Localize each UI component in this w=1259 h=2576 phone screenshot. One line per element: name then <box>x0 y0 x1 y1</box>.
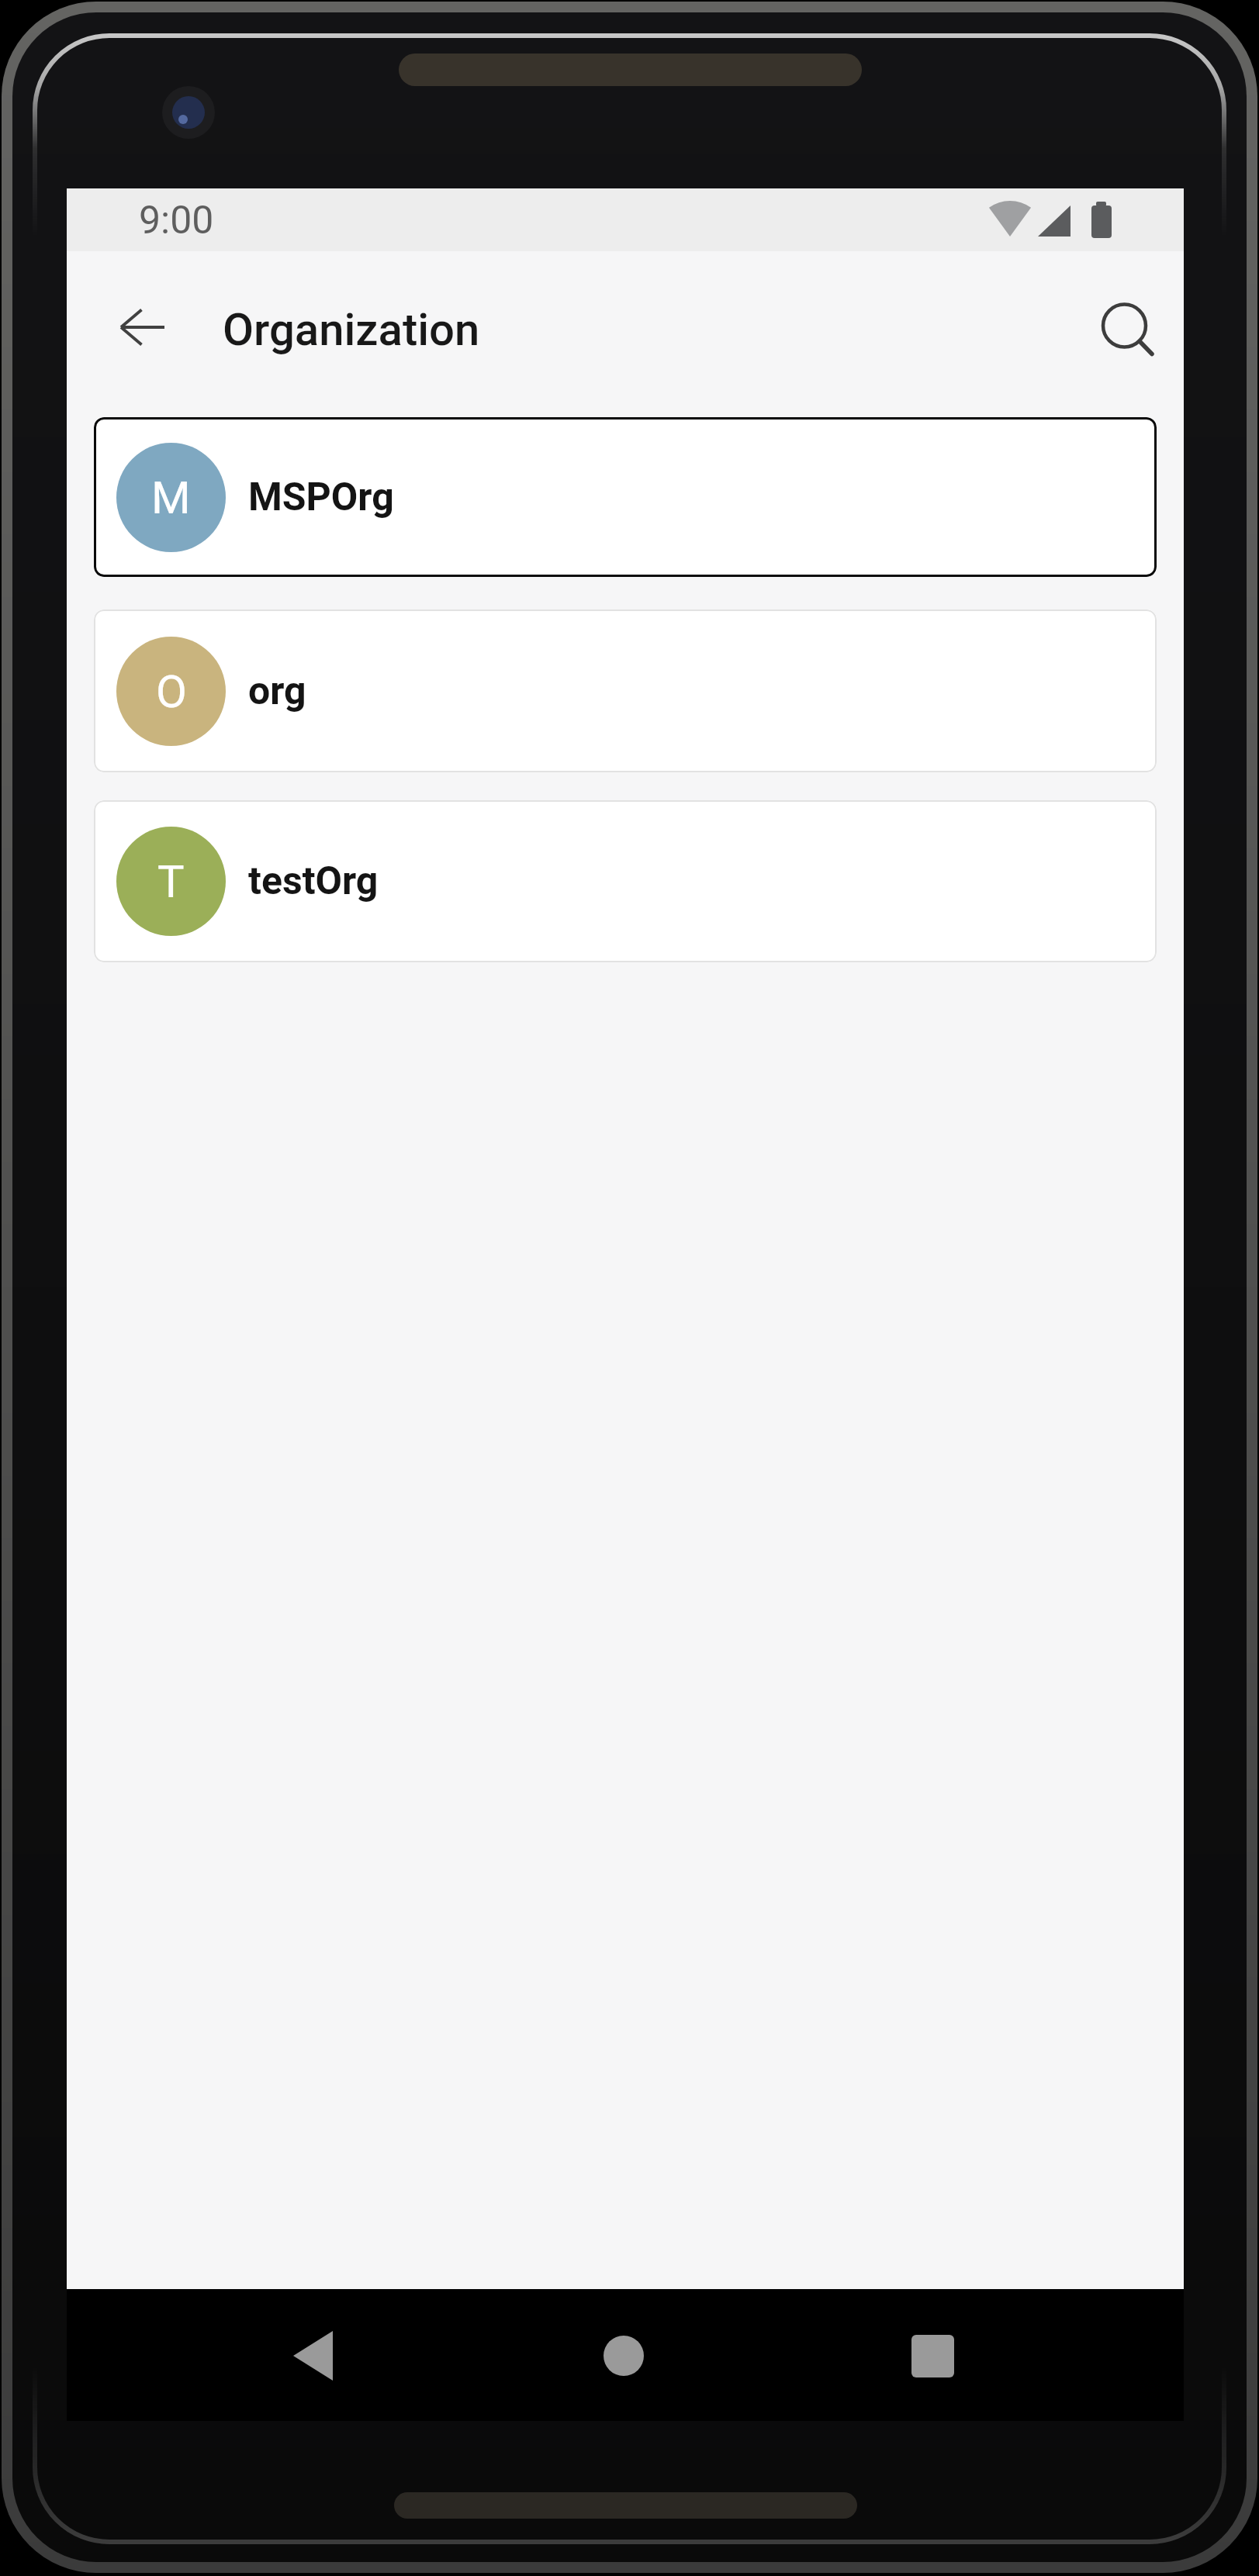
button[interactable] <box>67 2289 439 2421</box>
button[interactable] <box>811 2289 1184 2421</box>
staticText: M <box>151 471 191 524</box>
button[interactable] <box>1092 293 1157 358</box>
button[interactable] <box>439 2289 811 2421</box>
staticText: T <box>157 855 185 908</box>
staticText: 9:00 <box>139 198 214 243</box>
staticText: O <box>156 665 187 718</box>
staticText: testOrg <box>248 858 379 904</box>
staticText: org <box>248 668 306 714</box>
staticText: Organization <box>223 303 480 356</box>
button[interactable]: O <box>94 609 1157 772</box>
button[interactable]: M <box>94 417 1157 577</box>
button[interactable] <box>110 295 175 360</box>
staticText: MSPOrg <box>248 475 394 520</box>
button[interactable]: T <box>94 800 1157 962</box>
